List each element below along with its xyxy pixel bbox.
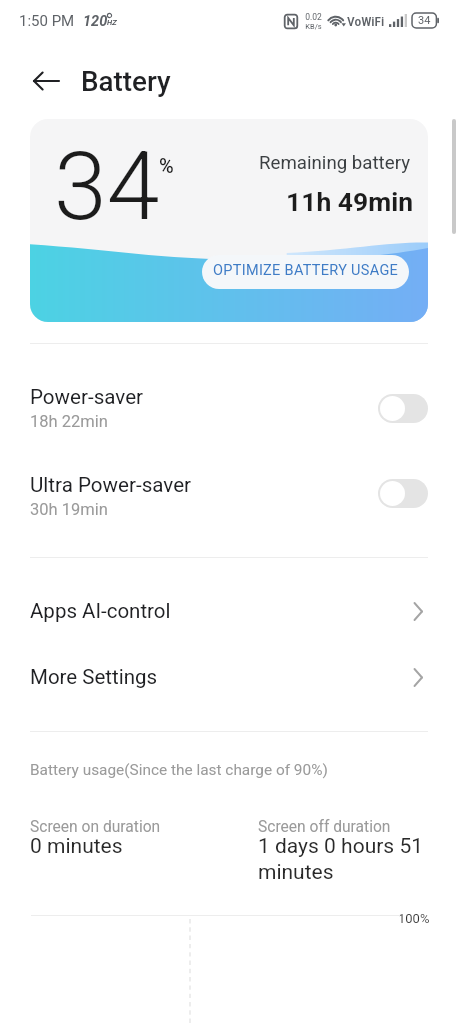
staticText: Remaining battery	[259, 152, 410, 174]
staticText: 11h 49min	[286, 186, 414, 217]
staticText: 34	[54, 131, 160, 242]
staticText: KB/s	[305, 22, 322, 31]
staticText: Apps AI-control	[30, 599, 419, 623]
button[interactable]: Apps AI-control	[0, 585, 459, 637]
button[interactable]: More Settings	[0, 651, 459, 703]
staticText: 34	[418, 14, 431, 27]
staticText: Ultra Power-saver	[30, 473, 192, 497]
staticText: Battery usage(Since the last charge of 9…	[30, 761, 328, 779]
staticText: 100%	[398, 911, 430, 926]
staticText: OPTIMIZE BATTERY USAGE	[213, 262, 399, 279]
staticText: 120	[83, 13, 108, 30]
staticText: %	[159, 154, 174, 177]
staticText: 0 minutes	[30, 834, 123, 859]
staticText: 18h 22min	[30, 412, 108, 431]
staticText: More Settings	[30, 665, 419, 689]
staticText: 1:50 PM	[19, 12, 75, 30]
staticText: VoWiFi	[347, 13, 385, 29]
button[interactable]: Back	[26, 61, 66, 101]
button[interactable]: Ultra Power-saver	[0, 462, 459, 530]
staticText: Screen off duration	[258, 818, 391, 836]
button[interactable]: OPTIMIZE BATTERY USAGE	[202, 255, 409, 289]
staticText: Power-saver	[30, 385, 144, 409]
staticText: 1 days 0 hours 51 minutes	[258, 834, 424, 884]
staticText: 30h 19min	[30, 500, 108, 519]
staticText: Battery	[81, 65, 171, 98]
staticText: 0.02	[305, 12, 322, 22]
staticText: Screen on duration	[30, 818, 161, 836]
button[interactable]: Power-saver	[0, 374, 459, 442]
staticText: HZ	[107, 18, 117, 27]
